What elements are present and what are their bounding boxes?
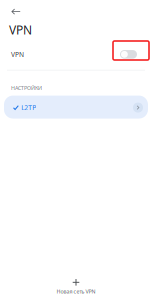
staticText: VPN <box>11 50 24 59</box>
button[interactable]: VPN <box>0 38 152 70</box>
staticText: VPN <box>9 22 32 38</box>
button[interactable]: Новая сеть VPN <box>0 279 152 300</box>
button[interactable]: Back <box>0 0 29 22</box>
button[interactable]: L2TP <box>0 96 148 119</box>
staticText: Новая сеть VPN <box>56 288 95 295</box>
staticText: L2TP <box>21 103 36 112</box>
staticText: НАСТРОЙКИ <box>11 84 42 92</box>
